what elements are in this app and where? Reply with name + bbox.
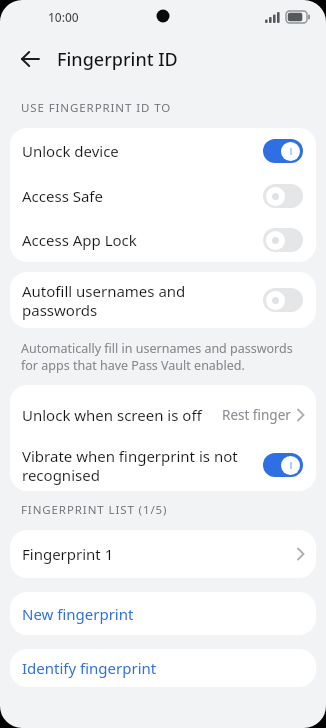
staticText: Automatically fill in usernames and pass… [21,340,293,373]
staticText: Fingerprint 1 [22,544,297,564]
button[interactable] [263,288,303,312]
button[interactable] [12,41,48,77]
button[interactable]: Autofill usernames and passwords [10,272,316,328]
button[interactable]: Access App Lock [10,218,316,262]
button[interactable] [263,139,303,163]
staticText: Autofill usernames and passwords [22,281,263,320]
staticText: FINGERPRINT LIST (1/5) [21,502,168,518]
staticText: Fingerprint ID [57,47,178,72]
button[interactable]: Identify fingerprint [10,649,316,687]
button[interactable] [263,453,303,477]
staticText: 10:00 [48,9,79,25]
button[interactable] [263,228,303,252]
button[interactable]: Unlock device [10,128,316,173]
staticText: USE FINGERPRINT ID TO [21,100,172,116]
button[interactable]: Fingerprint 1 [10,530,316,578]
button[interactable]: Access Safe [10,173,316,218]
staticText: Unlock device [22,141,263,161]
staticText: Rest finger [222,406,291,424]
button[interactable]: New fingerprint [10,592,316,635]
staticText: Unlock when screen is off [22,405,222,425]
button[interactable] [263,184,303,208]
staticText: Access App Lock [22,230,263,250]
button[interactable]: Unlock when screen is off [10,391,316,439]
staticText: Access Safe [22,186,263,206]
button[interactable]: Vibrate when fingerprint is not recognis… [10,439,316,491]
staticText: Vibrate when fingerprint is not recognis… [22,446,263,485]
staticText: New fingerprint [22,604,134,624]
staticText: Identify fingerprint [22,658,157,678]
